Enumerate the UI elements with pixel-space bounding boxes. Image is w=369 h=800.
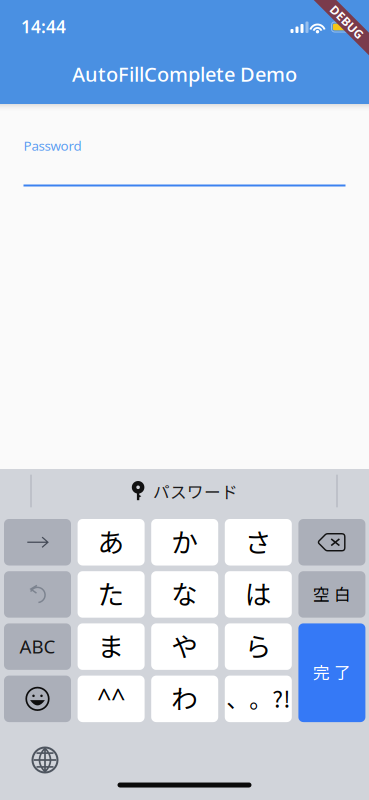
- staticText: パスワード: [153, 479, 238, 503]
- staticText: 、。?!: [226, 681, 290, 714]
- staticText: Password: [23, 137, 81, 154]
- staticText: か: [171, 521, 198, 560]
- button[interactable]: [298, 519, 365, 565]
- button[interactable]: ABC: [4, 623, 71, 670]
- staticText: 空 白: [313, 581, 351, 605]
- staticText: DEBUG: [326, 14, 368, 30]
- button[interactable]: 完 了: [298, 623, 365, 722]
- button[interactable]: 空 白: [298, 571, 365, 618]
- button[interactable]: さ: [225, 519, 292, 565]
- staticText: た: [98, 574, 125, 612]
- staticText: や: [171, 626, 198, 664]
- button[interactable]: パスワード: [34, 474, 334, 508]
- staticText: ま: [98, 626, 125, 664]
- staticText: な: [171, 574, 198, 612]
- button[interactable]: は: [225, 571, 292, 618]
- button[interactable]: や: [151, 623, 218, 670]
- button[interactable]: あ: [78, 519, 145, 565]
- button[interactable]: 、。?!: [225, 676, 292, 722]
- button[interactable]: [4, 676, 71, 722]
- button[interactable]: わ: [151, 676, 218, 722]
- button[interactable]: ^^: [78, 676, 145, 722]
- button[interactable]: か: [151, 519, 218, 565]
- staticText: わ: [171, 678, 198, 717]
- button[interactable]: な: [151, 571, 218, 618]
- staticText: ^^: [97, 680, 125, 714]
- button[interactable]: た: [78, 571, 145, 618]
- staticText: あ: [98, 521, 125, 560]
- staticText: ら: [245, 626, 272, 664]
- staticText: 完 了: [313, 660, 351, 684]
- button[interactable]: ら: [225, 623, 292, 670]
- button[interactable]: Change keyboard: [21, 738, 69, 782]
- button[interactable]: [4, 571, 71, 618]
- staticText: ABC: [19, 634, 55, 659]
- button[interactable]: ま: [78, 623, 145, 670]
- staticText: さ: [245, 521, 272, 560]
- button[interactable]: [4, 519, 71, 565]
- staticText: は: [245, 574, 272, 612]
- staticText: AutoFillComplete Demo: [72, 61, 297, 87]
- staticText: 14:44: [21, 15, 66, 38]
